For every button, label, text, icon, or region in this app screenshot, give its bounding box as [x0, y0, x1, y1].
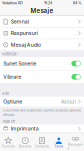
staticText: Notificari — [2, 52, 18, 56]
staticText: Recente — [19, 144, 32, 148]
staticText: Astazi — [61, 99, 76, 105]
staticText: Semnal — [11, 18, 29, 25]
button[interactable]: Contacte — [34, 135, 50, 148]
staticText: 84 % — [73, 1, 82, 5]
staticText: Sunet Sonerie — [3, 60, 36, 67]
staticText: Contacte — [35, 144, 49, 148]
button[interactable]: Sunet Sonerie — [71, 61, 81, 66]
button[interactable]: Raspunsuri — [0, 28, 84, 39]
staticText: Vibrare — [3, 74, 21, 80]
staticText: Alte — [2, 91, 9, 96]
button[interactable]: Favorite — [0, 135, 17, 148]
button[interactable]: Optiune — [0, 97, 84, 107]
button[interactable]: Recente — [17, 135, 34, 148]
button[interactable]: Imprimanta — [0, 124, 84, 133]
staticText: Mesaj Audio — [11, 42, 41, 48]
staticText: Favorite — [2, 144, 15, 148]
button[interactable]: Semnal — [0, 16, 84, 27]
staticText: Optiune — [3, 98, 22, 105]
staticText: Tiparire — [2, 119, 15, 124]
staticText: Mesaje — [30, 7, 53, 14]
button[interactable]: Mesagerie — [67, 134, 84, 150]
staticText: 15:24 — [44, 1, 52, 5]
button[interactable]: Mesaj Audio — [0, 39, 84, 50]
staticText: Raspunsuri — [11, 30, 38, 36]
staticText: Vodafone RO — [2, 1, 23, 5]
staticText: Mesagerie — [68, 143, 84, 150]
staticText: Descriere text explicativ pentru aceasta… — [3, 108, 81, 117]
staticText: Imprimanta — [11, 125, 39, 132]
staticText: Taste — [54, 144, 63, 148]
button[interactable]: Vibrare — [71, 74, 81, 80]
button[interactable]: Taste — [50, 135, 67, 148]
